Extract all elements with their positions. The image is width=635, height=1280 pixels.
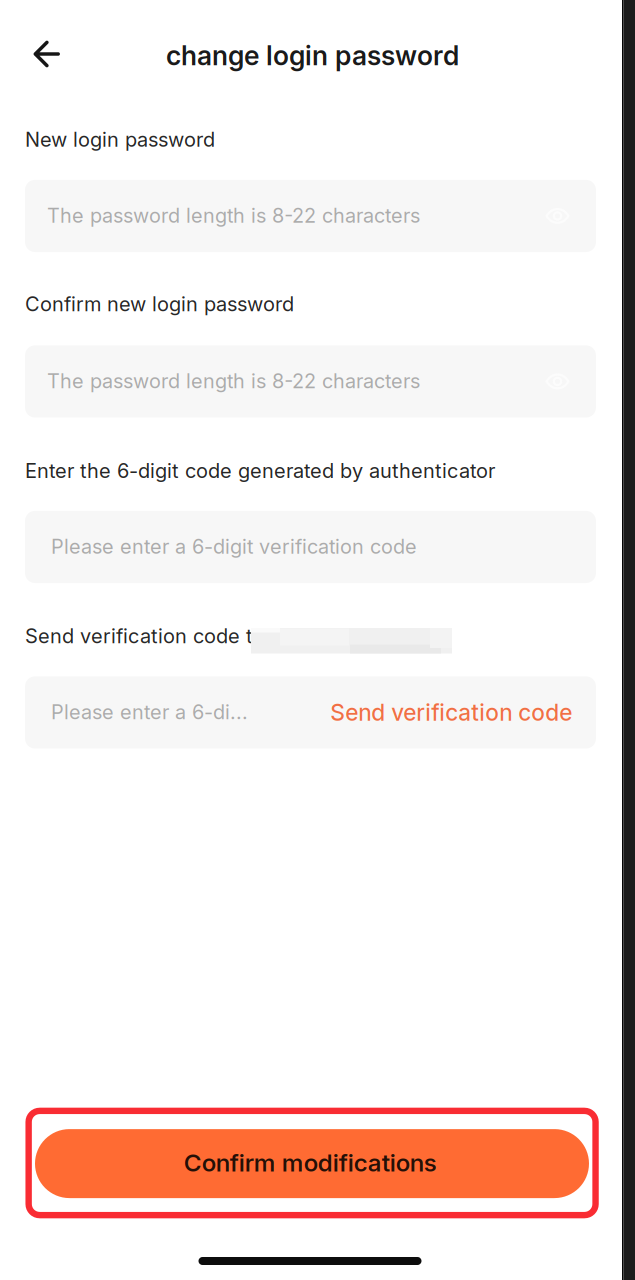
staticText: The password length is 8-22 characters — [47, 369, 420, 393]
staticText: Enter the 6-digit code generated by auth… — [25, 459, 495, 483]
staticText: Confirm modifications — [184, 1148, 437, 1177]
staticText: New login password — [25, 127, 215, 151]
staticText: Confirm new login password — [25, 292, 294, 316]
staticText: Send verification code — [330, 699, 572, 726]
staticText: The password length is 8-22 characters — [47, 204, 420, 228]
button[interactable]: Please enter a 6-digit verification code — [25, 511, 596, 583]
staticText: change login password — [166, 39, 459, 72]
button[interactable]: Back — [17, 25, 75, 83]
button[interactable]: Send verification code — [330, 676, 596, 749]
button[interactable]: Confirm modifications — [35, 1129, 589, 1198]
staticText: Please enter a 6-digit verification code — [51, 535, 417, 559]
button[interactable]: The password length is 8-22 characters — [25, 180, 596, 252]
button[interactable]: The password length is 8-22 characters — [25, 345, 596, 417]
staticText: Please enter a 6-di... — [51, 700, 248, 724]
staticText: Send verification code t — [25, 624, 253, 648]
